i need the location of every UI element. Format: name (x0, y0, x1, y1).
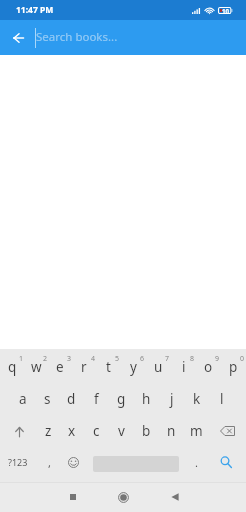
button[interactable]: g (109, 383, 134, 415)
staticText: t (106, 358, 111, 376)
staticText: p (229, 358, 238, 376)
staticText: l (220, 390, 224, 408)
staticText: k (193, 390, 201, 408)
button[interactable]: s (35, 383, 59, 415)
staticText: 9 (215, 354, 220, 364)
button[interactable]: m (184, 415, 209, 447)
button[interactable]: l (209, 383, 234, 415)
button[interactable]: k (184, 383, 209, 415)
button[interactable]: e (48, 351, 72, 383)
staticText: f (94, 390, 99, 408)
button[interactable]: w (24, 351, 48, 383)
staticText: 3 (67, 354, 72, 364)
button[interactable]: Shift (0, 415, 36, 447)
staticText: 10 (222, 7, 230, 14)
staticText: v (118, 422, 125, 440)
button[interactable]: p (221, 351, 246, 383)
button[interactable]: Backspace (209, 415, 246, 447)
staticText: j (170, 390, 174, 408)
staticText: n (167, 422, 176, 440)
button[interactable]: Search (206, 446, 246, 478)
button[interactable]: n (159, 415, 184, 447)
button[interactable]: h (134, 383, 159, 415)
button[interactable]: t (96, 351, 121, 383)
staticText: y (130, 358, 137, 376)
staticText: . (195, 455, 198, 470)
staticText: 1 (19, 354, 24, 364)
staticText: s (44, 390, 51, 408)
staticText: x (68, 422, 76, 440)
button[interactable]: y (121, 351, 146, 383)
button[interactable]: z (36, 415, 60, 447)
button[interactable]: i (171, 351, 196, 383)
staticText: 8 (190, 354, 195, 364)
staticText: h (142, 390, 151, 408)
button[interactable]: c (84, 415, 109, 447)
button[interactable]: u (146, 351, 171, 383)
button[interactable]: x (60, 415, 84, 447)
staticText: ?123 (8, 456, 28, 468)
button[interactable]: Home (98, 482, 149, 512)
staticText: Search books... (36, 29, 118, 45)
staticText: u (154, 358, 163, 376)
button[interactable]: a (11, 383, 35, 415)
staticText: g (117, 390, 126, 408)
staticText: 7 (165, 354, 170, 364)
button[interactable]: ?123 (0, 446, 36, 478)
button[interactable]: Emoji (62, 446, 85, 478)
staticText: i (182, 358, 186, 376)
button[interactable]: , (36, 446, 62, 478)
staticText: 11:47 PM (16, 4, 54, 16)
button[interactable]: j (159, 383, 184, 415)
button[interactable]: Recent apps (47, 482, 98, 512)
staticText: 0 (240, 354, 245, 364)
staticText: a (19, 390, 27, 408)
staticText: 5 (115, 354, 120, 364)
staticText: d (67, 390, 76, 408)
staticText: r (81, 358, 87, 376)
staticText: c (93, 422, 100, 440)
staticText: o (204, 358, 213, 376)
button[interactable]: Back (149, 482, 200, 512)
button[interactable]: . (187, 446, 206, 478)
staticText: w (31, 358, 42, 376)
staticText: 2 (43, 354, 48, 364)
button[interactable]: b (134, 415, 159, 447)
staticText: z (45, 422, 52, 440)
button[interactable]: d (59, 383, 84, 415)
staticText: b (142, 422, 151, 440)
button[interactable]: q (0, 351, 24, 383)
staticText: 6 (140, 354, 145, 364)
button[interactable]: f (84, 383, 109, 415)
button[interactable]: o (196, 351, 221, 383)
staticText: m (190, 422, 203, 440)
button[interactable]: r (72, 351, 96, 383)
staticText: 4 (91, 354, 96, 364)
staticText: q (8, 358, 17, 376)
staticText: , (48, 455, 51, 470)
staticText: e (56, 358, 64, 376)
button[interactable]: v (109, 415, 134, 447)
button[interactable]: Back (2, 22, 34, 54)
